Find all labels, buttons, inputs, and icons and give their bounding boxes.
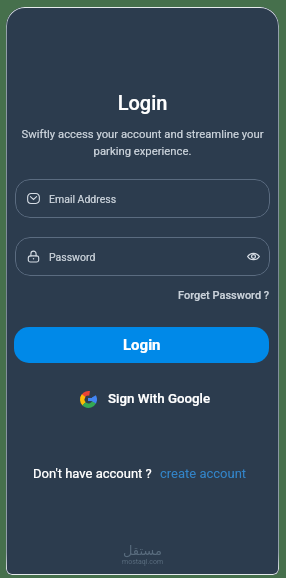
button[interactable]: Login bbox=[14, 327, 269, 363]
staticText: مستقل bbox=[123, 543, 162, 558]
staticText: Login bbox=[6, 91, 279, 114]
button[interactable]: Password bbox=[15, 237, 270, 276]
button[interactable]: create account bbox=[160, 466, 247, 481]
staticText: Login bbox=[123, 336, 161, 354]
button[interactable]: Forget Password ? bbox=[172, 285, 276, 306]
staticText: mostaql.com bbox=[122, 558, 164, 566]
staticText: Swiftly access your account and streamli… bbox=[20, 128, 265, 158]
staticText: Forget Password ? bbox=[178, 289, 270, 302]
staticText: Password bbox=[49, 251, 96, 263]
button[interactable]: Email Address bbox=[15, 179, 270, 218]
other: Show password bbox=[247, 250, 260, 263]
button[interactable]: Sign With Google bbox=[80, 385, 211, 413]
staticText: Email Address bbox=[49, 193, 117, 205]
staticText: create account bbox=[160, 466, 247, 481]
staticText: Don't have account ? bbox=[33, 466, 152, 481]
staticText: Sign With Google bbox=[108, 391, 211, 407]
